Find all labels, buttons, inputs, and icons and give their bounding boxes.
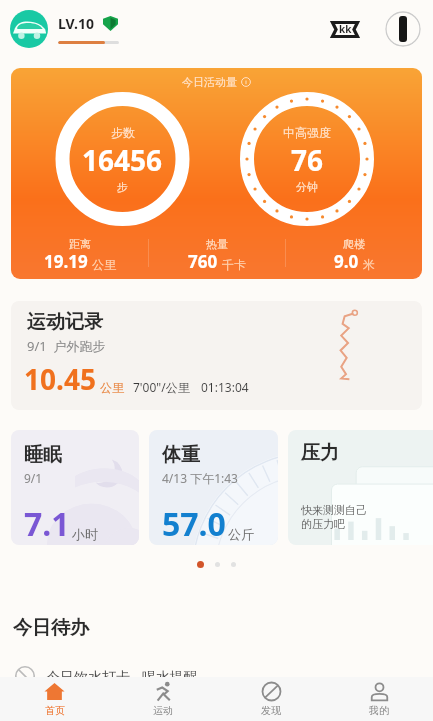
staticText: 公里 xyxy=(92,257,116,272)
staticText: 9/1 xyxy=(24,470,43,486)
staticText: 睡眠 xyxy=(24,443,62,467)
staticText: 发现 xyxy=(261,704,281,717)
staticText: 7'00"/公里 xyxy=(133,379,190,395)
staticText: 步数 xyxy=(111,125,135,140)
staticText: 热量 xyxy=(206,237,228,251)
staticText: 快来测测自己 的压力吧 xyxy=(301,503,367,531)
staticText: 01:13:04 xyxy=(201,379,249,395)
staticText: 爬楼 xyxy=(343,237,365,251)
staticText: 今日饮水打卡 - 喝水提醒 xyxy=(46,667,198,686)
staticText: 压力 xyxy=(301,441,339,465)
staticText: 中高强度 xyxy=(283,125,331,140)
staticText: 首页 xyxy=(45,704,65,717)
staticText: 体重 xyxy=(162,443,200,467)
staticText: LV.10 xyxy=(58,14,94,33)
button[interactable]: Profile xyxy=(10,10,48,48)
button[interactable]: Device xyxy=(385,11,421,47)
staticText: 分钟 xyxy=(296,180,318,194)
staticText: 小时 xyxy=(72,526,98,542)
staticText: 57.0 xyxy=(162,502,226,545)
staticText: 米 xyxy=(363,257,375,272)
staticText: 今日待办 xyxy=(13,616,89,640)
button[interactable]: 体重 xyxy=(149,430,278,545)
button[interactable]: 运动记录 xyxy=(11,301,422,410)
staticText: 19.19 xyxy=(44,250,88,273)
button[interactable]: 今日活动量 xyxy=(11,68,422,279)
staticText: kk xyxy=(339,22,352,36)
button[interactable]: 发现 xyxy=(217,677,325,721)
staticText: 步 xyxy=(117,180,128,194)
staticText: 今日活动量 xyxy=(182,75,237,89)
staticText: 距离 xyxy=(69,237,91,251)
button[interactable]: 运动 xyxy=(109,677,217,721)
button[interactable]: 压力 xyxy=(288,430,433,545)
staticText: 10.45 xyxy=(24,360,96,398)
staticText: 7.1 xyxy=(24,502,70,545)
button[interactable]: 睡眠 xyxy=(11,430,139,545)
staticText: 760 xyxy=(188,250,218,273)
button[interactable]: 我的 xyxy=(325,677,433,721)
staticText: 公斤 xyxy=(228,526,254,542)
staticText: 9.0 xyxy=(334,250,359,273)
button[interactable]: Coupons xyxy=(329,13,361,45)
staticText: 9/1 户外跑步 xyxy=(27,337,106,355)
staticText: 我的 xyxy=(369,704,389,717)
staticText: 运动记录 xyxy=(27,310,103,334)
staticText: 千卡 xyxy=(222,257,246,272)
button[interactable]: 首页 xyxy=(0,677,109,721)
staticText: 76 xyxy=(291,141,324,179)
staticText: 16456 xyxy=(82,141,163,179)
staticText: 4/13 下午1:43 xyxy=(162,470,238,486)
staticText: 公里 xyxy=(100,380,124,395)
staticText: 运动 xyxy=(153,704,173,717)
